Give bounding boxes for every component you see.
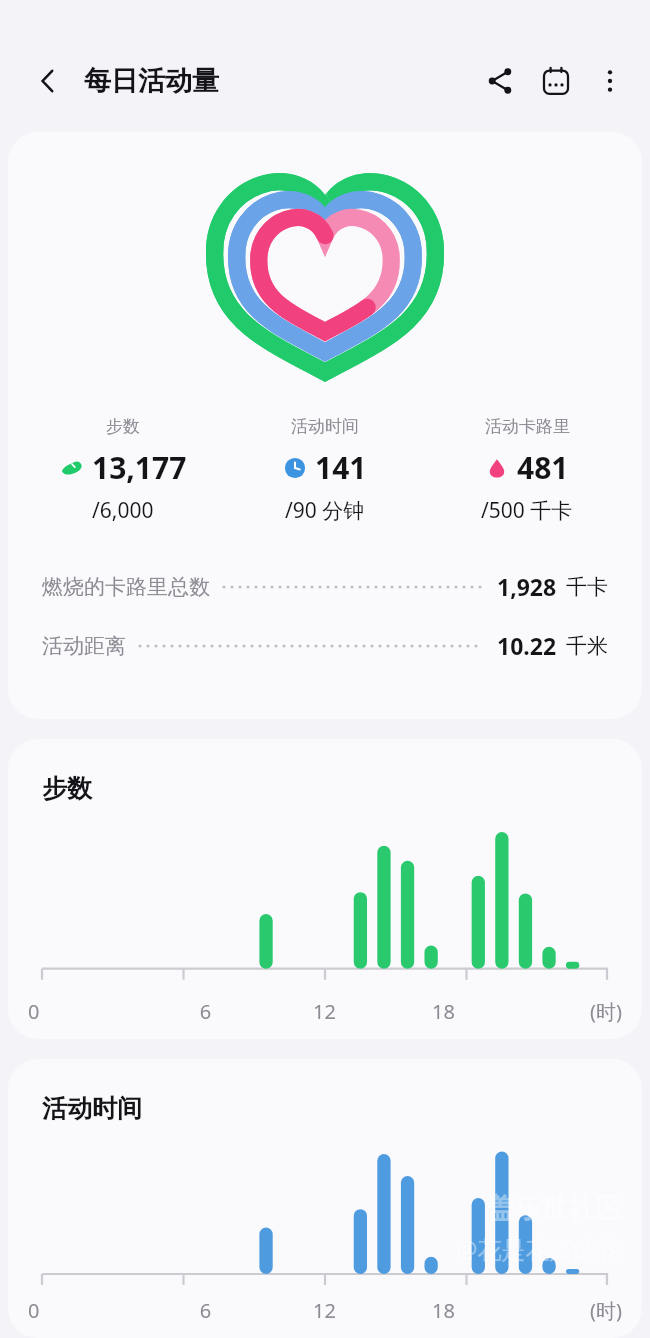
staticText: 燃烧的卡路里总数: [42, 574, 210, 600]
staticText: 千卡: [566, 574, 608, 600]
button[interactable]: 活动卡路里: [426, 416, 628, 525]
button[interactable]: 活动时间: [224, 416, 426, 525]
button[interactable]: Back: [22, 55, 74, 107]
staticText: 1,928: [497, 571, 557, 602]
staticText: 12: [265, 1297, 384, 1324]
button[interactable]: 步数: [8, 132, 642, 719]
button[interactable]: 活动时间: [8, 1059, 642, 1338]
staticText: 0: [28, 998, 146, 1025]
button[interactable]: 燃烧的卡路里总数: [42, 571, 608, 602]
button[interactable]: Calendar: [528, 53, 584, 109]
staticText: 6: [146, 1297, 265, 1324]
staticText: 千米: [566, 633, 608, 659]
staticText: 18: [384, 1297, 503, 1324]
staticText: 10.22: [497, 630, 557, 661]
staticText: 13,177: [92, 447, 187, 488]
staticText: 每日活动量: [84, 64, 219, 98]
staticText: 12: [265, 998, 384, 1025]
staticText: 活动卡路里: [485, 416, 570, 437]
staticText: 6: [146, 998, 265, 1025]
staticText: /500 千卡: [481, 496, 573, 525]
staticText: 盖乐世社区: [487, 1192, 622, 1226]
button[interactable]: 步数: [22, 416, 224, 525]
staticText: @花是花婿的花: [456, 1232, 622, 1265]
staticText: /90 分钟: [285, 496, 365, 525]
staticText: 0: [28, 1297, 146, 1324]
staticText: 步数: [42, 773, 92, 804]
staticText: (时): [503, 998, 622, 1025]
staticText: (时): [503, 1297, 622, 1324]
staticText: 481: [517, 447, 569, 488]
staticText: /6,000: [92, 496, 154, 525]
staticText: 141: [315, 447, 367, 488]
button[interactable]: 步数: [8, 739, 642, 1039]
staticText: 步数: [106, 416, 140, 437]
staticText: 活动距离: [42, 633, 126, 659]
staticText: 活动时间: [291, 416, 359, 437]
staticText: 18: [384, 998, 503, 1025]
staticText: 活动时间: [42, 1093, 142, 1124]
button[interactable]: 活动距离: [42, 630, 608, 661]
button[interactable]: Share: [472, 53, 528, 109]
button[interactable]: More options: [584, 55, 636, 107]
